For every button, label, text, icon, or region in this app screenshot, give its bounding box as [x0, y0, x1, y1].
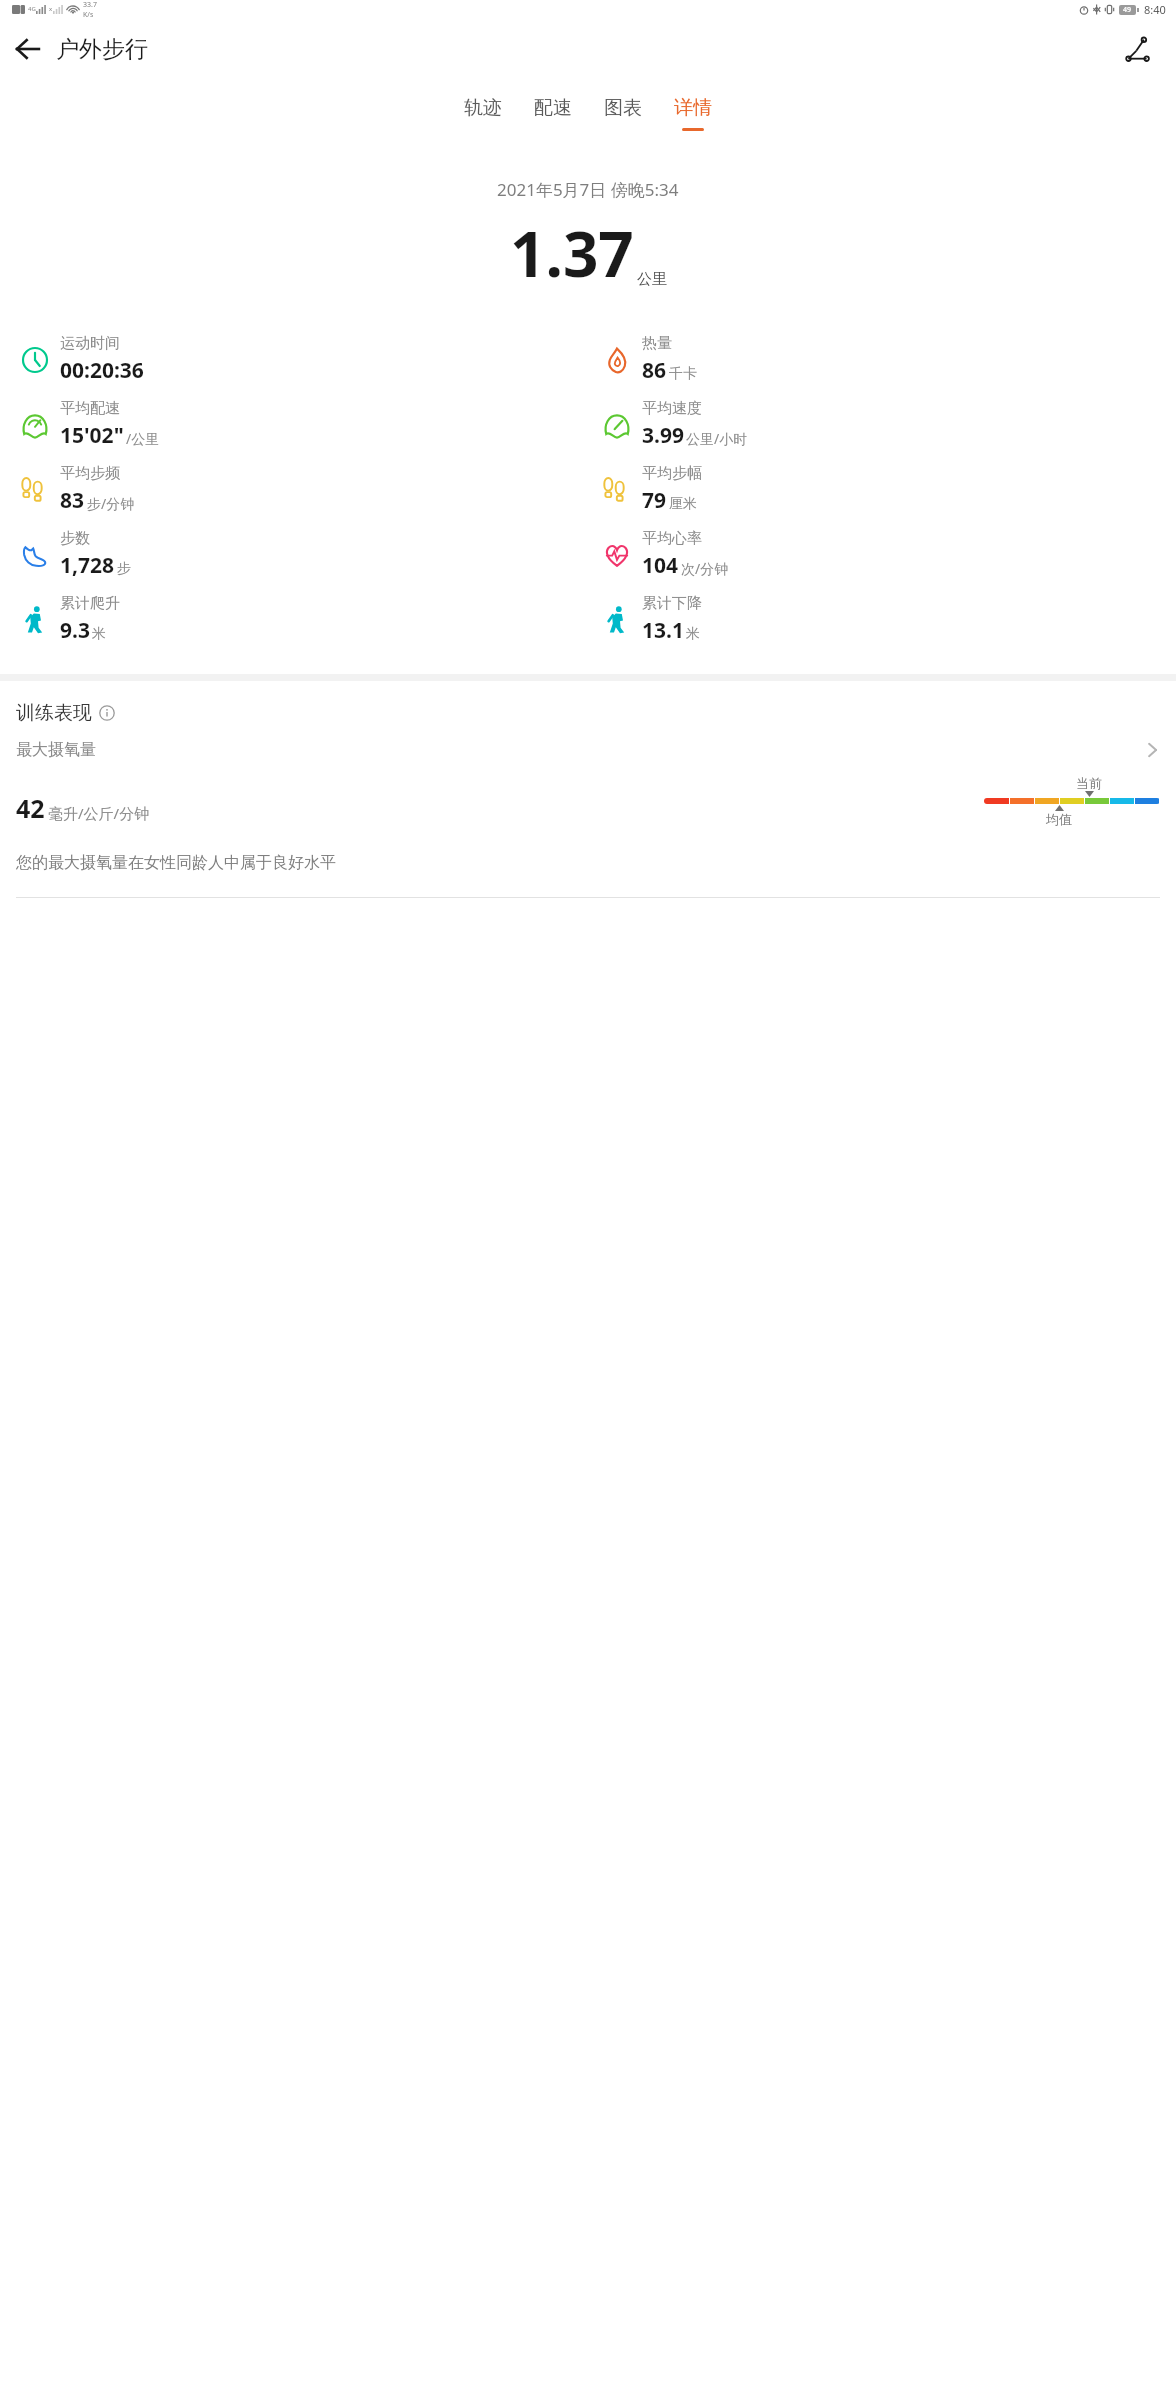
staticText: 米 — [92, 625, 106, 643]
staticText: 详情 — [674, 96, 712, 120]
staticText: 公里/小时 — [686, 429, 748, 448]
button[interactable]: 累计爬升 — [14, 587, 588, 652]
staticText: 公里 — [637, 270, 667, 289]
staticText: 次/分钟 — [681, 559, 729, 578]
button[interactable]: 平均速度 — [596, 392, 1176, 457]
staticText: 配速 — [534, 96, 572, 120]
staticText: x — [49, 5, 53, 13]
button[interactable]: 运动时间 — [14, 327, 588, 392]
staticText: 当前 — [1076, 775, 1102, 791]
button[interactable]: 轨迹 — [448, 94, 518, 133]
staticText: 79 — [642, 486, 667, 515]
staticText: 步/分钟 — [87, 494, 135, 513]
staticText: 42 — [16, 791, 45, 825]
staticText: 00:20:36 — [60, 356, 144, 385]
staticText: 104 — [642, 551, 679, 580]
staticText: 步 — [117, 560, 131, 578]
staticText: 累计爬升 — [60, 594, 120, 613]
staticText: 1,728 — [60, 551, 115, 580]
staticText: 平均步幅 — [642, 464, 702, 483]
staticText: 轨迹 — [464, 96, 502, 120]
staticText: K/s — [83, 10, 94, 18]
button[interactable]: 详情 — [658, 94, 728, 133]
button[interactable]: Back — [0, 21, 56, 77]
staticText: 累计下降 — [642, 594, 702, 613]
staticText: 3.99 — [642, 421, 684, 450]
staticText: 均值 — [1046, 811, 1072, 827]
button[interactable]: 累计下降 — [596, 587, 1176, 652]
staticText: 86 — [642, 356, 667, 385]
button[interactable]: Share — [1110, 21, 1166, 77]
staticText: 平均速度 — [642, 399, 702, 418]
staticText: 平均心率 — [642, 529, 702, 548]
staticText: 83 — [60, 486, 85, 515]
staticText: 1.37 — [510, 211, 634, 295]
button[interactable]: 图表 — [588, 94, 658, 133]
button[interactable]: 平均心率 — [596, 522, 1176, 587]
staticText: 4G — [28, 5, 36, 13]
staticText: 米 — [686, 625, 700, 643]
staticText: 2021年5月7日 傍晚5:34 — [497, 178, 679, 201]
staticText: 厘米 — [669, 495, 697, 513]
button[interactable]: 平均步频 — [14, 457, 588, 522]
staticText: 千卡 — [669, 365, 697, 383]
staticText: 图表 — [604, 96, 642, 120]
button[interactable]: 最大摄氧量 — [16, 739, 1160, 761]
staticText: 13.1 — [642, 616, 684, 645]
button[interactable]: 训练表现 — [16, 701, 115, 725]
staticText: 毫升/公斤/分钟 — [48, 803, 150, 823]
button[interactable]: 配速 — [518, 94, 588, 133]
staticText: 33.7 — [83, 0, 97, 10]
button[interactable]: 步数 — [14, 522, 588, 587]
staticText: 户外步行 — [56, 35, 148, 64]
staticText: 49 — [1123, 5, 1132, 15]
staticText: 平均步频 — [60, 464, 120, 483]
button[interactable]: 平均步幅 — [596, 457, 1176, 522]
button[interactable]: 平均配速 — [14, 392, 588, 457]
staticText: 热量 — [642, 334, 672, 353]
staticText: 您的最大摄氧量在女性同龄人中属于良好水平 — [16, 853, 336, 873]
button[interactable]: 热量 — [596, 327, 1176, 392]
staticText: 8:40 — [1144, 2, 1166, 17]
staticText: 平均配速 — [60, 399, 120, 418]
staticText: 15'02" — [60, 421, 124, 450]
staticText: 运动时间 — [60, 334, 120, 353]
staticText: /公里 — [126, 429, 160, 448]
staticText: 训练表现 — [16, 701, 92, 725]
staticText: 9.3 — [60, 616, 90, 645]
staticText: 最大摄氧量 — [16, 740, 96, 760]
staticText: 步数 — [60, 529, 90, 548]
